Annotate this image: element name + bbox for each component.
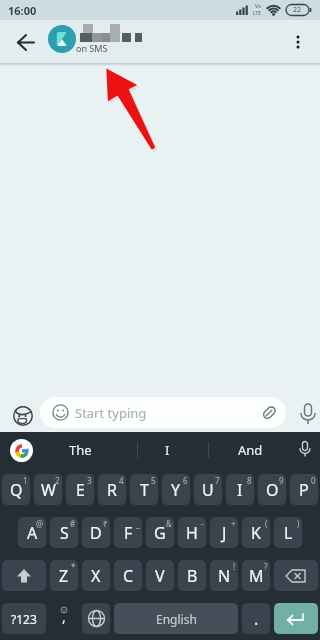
staticText: - — [201, 518, 204, 529]
staticText: 22 — [293, 5, 302, 15]
staticText: U — [202, 479, 214, 501]
staticText: M — [249, 565, 264, 587]
button[interactable]: J — [210, 517, 238, 548]
staticText: W — [41, 479, 56, 501]
button[interactable] — [274, 560, 318, 591]
button[interactable] — [10, 439, 33, 462]
button[interactable]: N — [210, 560, 238, 591]
staticText: ?123 — [11, 611, 37, 627]
staticText: 4 — [119, 475, 124, 486]
button[interactable]: M — [242, 560, 270, 591]
button[interactable] — [82, 603, 110, 634]
staticText: G — [154, 522, 166, 544]
staticText: _ — [136, 518, 140, 529]
staticText: Vo — [255, 3, 261, 10]
staticText: Start typing — [75, 404, 147, 422]
button[interactable]: ?123 — [2, 603, 46, 634]
staticText: D — [90, 522, 102, 544]
staticText: F — [124, 522, 133, 544]
button[interactable] — [0, 20, 48, 63]
button[interactable] — [274, 603, 318, 634]
staticText: 2 — [55, 475, 60, 486]
staticText: Z — [59, 565, 69, 587]
button[interactable]: C — [114, 560, 142, 591]
staticText: N — [218, 565, 231, 587]
button[interactable]: R — [98, 474, 126, 505]
staticText: ) — [297, 518, 300, 529]
staticText: C — [123, 565, 134, 587]
button[interactable] — [48, 25, 76, 53]
staticText: E — [76, 479, 85, 501]
button[interactable]: Y — [162, 474, 190, 505]
staticText: . — [254, 608, 259, 630]
staticText: O — [266, 479, 279, 501]
staticText: R — [107, 479, 117, 501]
staticText: English — [156, 611, 197, 627]
button[interactable]: And — [228, 432, 272, 468]
button[interactable]: S — [50, 517, 78, 548]
staticText: @ — [36, 518, 44, 529]
button[interactable]: K — [242, 517, 270, 548]
button[interactable] — [292, 436, 318, 464]
staticText: L — [284, 522, 293, 544]
button[interactable]: G — [146, 517, 174, 548]
button[interactable]: E — [66, 474, 94, 505]
button[interactable]: D — [82, 517, 110, 548]
button[interactable]: A — [18, 517, 46, 548]
staticText: Y — [171, 479, 181, 501]
staticText: 8 — [247, 475, 252, 486]
staticText: 9 — [279, 475, 284, 486]
staticText: Q — [10, 479, 23, 501]
button[interactable] — [2, 560, 46, 591]
staticText: H — [186, 522, 198, 544]
staticText: # — [70, 518, 76, 529]
button[interactable] — [13, 406, 33, 426]
button[interactable]: L — [274, 517, 302, 548]
staticText: P — [299, 479, 309, 501]
staticText: ! — [233, 561, 236, 572]
staticText: And — [238, 441, 263, 459]
button[interactable] — [276, 20, 320, 63]
button[interactable]: W — [34, 474, 62, 505]
button[interactable] — [296, 402, 318, 428]
button[interactable]: The — [58, 432, 102, 468]
button[interactable]: , — [50, 603, 78, 634]
staticText: , — [62, 607, 66, 626]
button[interactable]: T — [130, 474, 158, 505]
staticText: ₹ — [103, 518, 108, 529]
staticText: 0 — [311, 475, 316, 486]
staticText: 5 — [151, 475, 156, 486]
staticText: T — [140, 479, 149, 501]
staticText: & — [166, 518, 172, 529]
staticText: K — [251, 522, 261, 544]
button[interactable]: X — [82, 560, 110, 591]
staticText: ( — [265, 518, 268, 529]
staticText: 6 — [183, 475, 188, 486]
button[interactable]: U — [194, 474, 222, 505]
staticText: 3 — [87, 475, 92, 486]
button[interactable]: O — [258, 474, 286, 505]
button[interactable]: P — [290, 474, 318, 505]
staticText: I — [237, 479, 243, 501]
staticText: The — [69, 441, 92, 459]
button[interactable]: Start typing — [40, 397, 286, 428]
staticText: X — [91, 565, 101, 587]
button[interactable]: I — [147, 432, 187, 468]
staticText: + — [231, 518, 236, 529]
staticText: A — [27, 522, 38, 544]
staticText: B — [187, 565, 198, 587]
button[interactable]: F — [114, 517, 142, 548]
button[interactable]: H — [178, 517, 206, 548]
staticText: on SMS — [76, 42, 108, 54]
staticText: LTE — [253, 10, 262, 17]
button[interactable]: . — [242, 603, 270, 634]
button[interactable]: English — [114, 603, 238, 634]
button[interactable]: Q — [2, 474, 30, 505]
staticText: * — [71, 561, 76, 572]
staticText: ? — [264, 561, 268, 572]
button[interactable]: B — [178, 560, 206, 591]
button[interactable]: I — [226, 474, 254, 505]
button[interactable]: V — [146, 560, 174, 591]
staticText: 7 — [215, 475, 220, 486]
button[interactable]: Z — [50, 560, 78, 591]
